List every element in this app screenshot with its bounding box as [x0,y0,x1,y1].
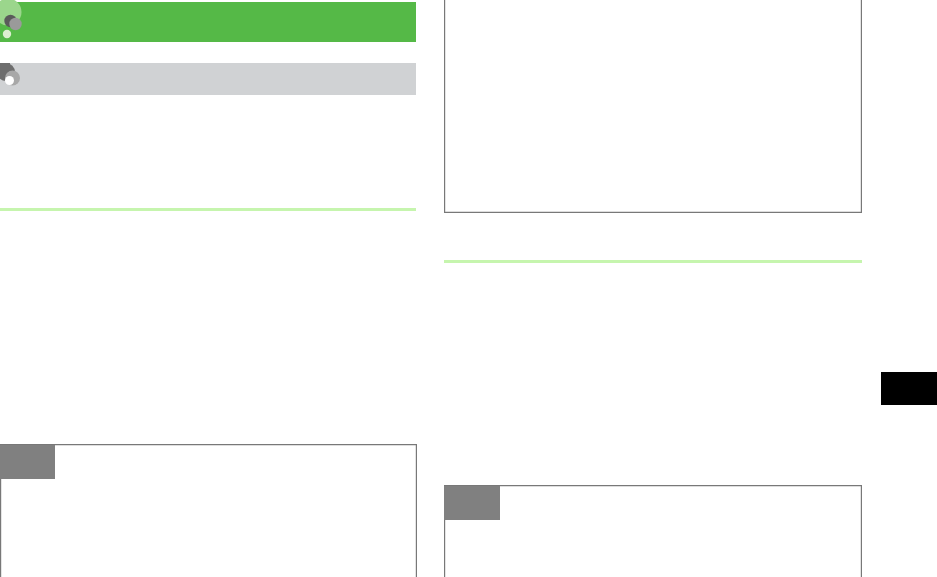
button[interactable]: Account [0,63,24,95]
button[interactable] [444,485,862,577]
button[interactable] [444,0,862,213]
button[interactable] [0,63,416,95]
button[interactable]: Profile [0,2,28,42]
button[interactable] [0,2,416,42]
button[interactable] [0,444,417,577]
